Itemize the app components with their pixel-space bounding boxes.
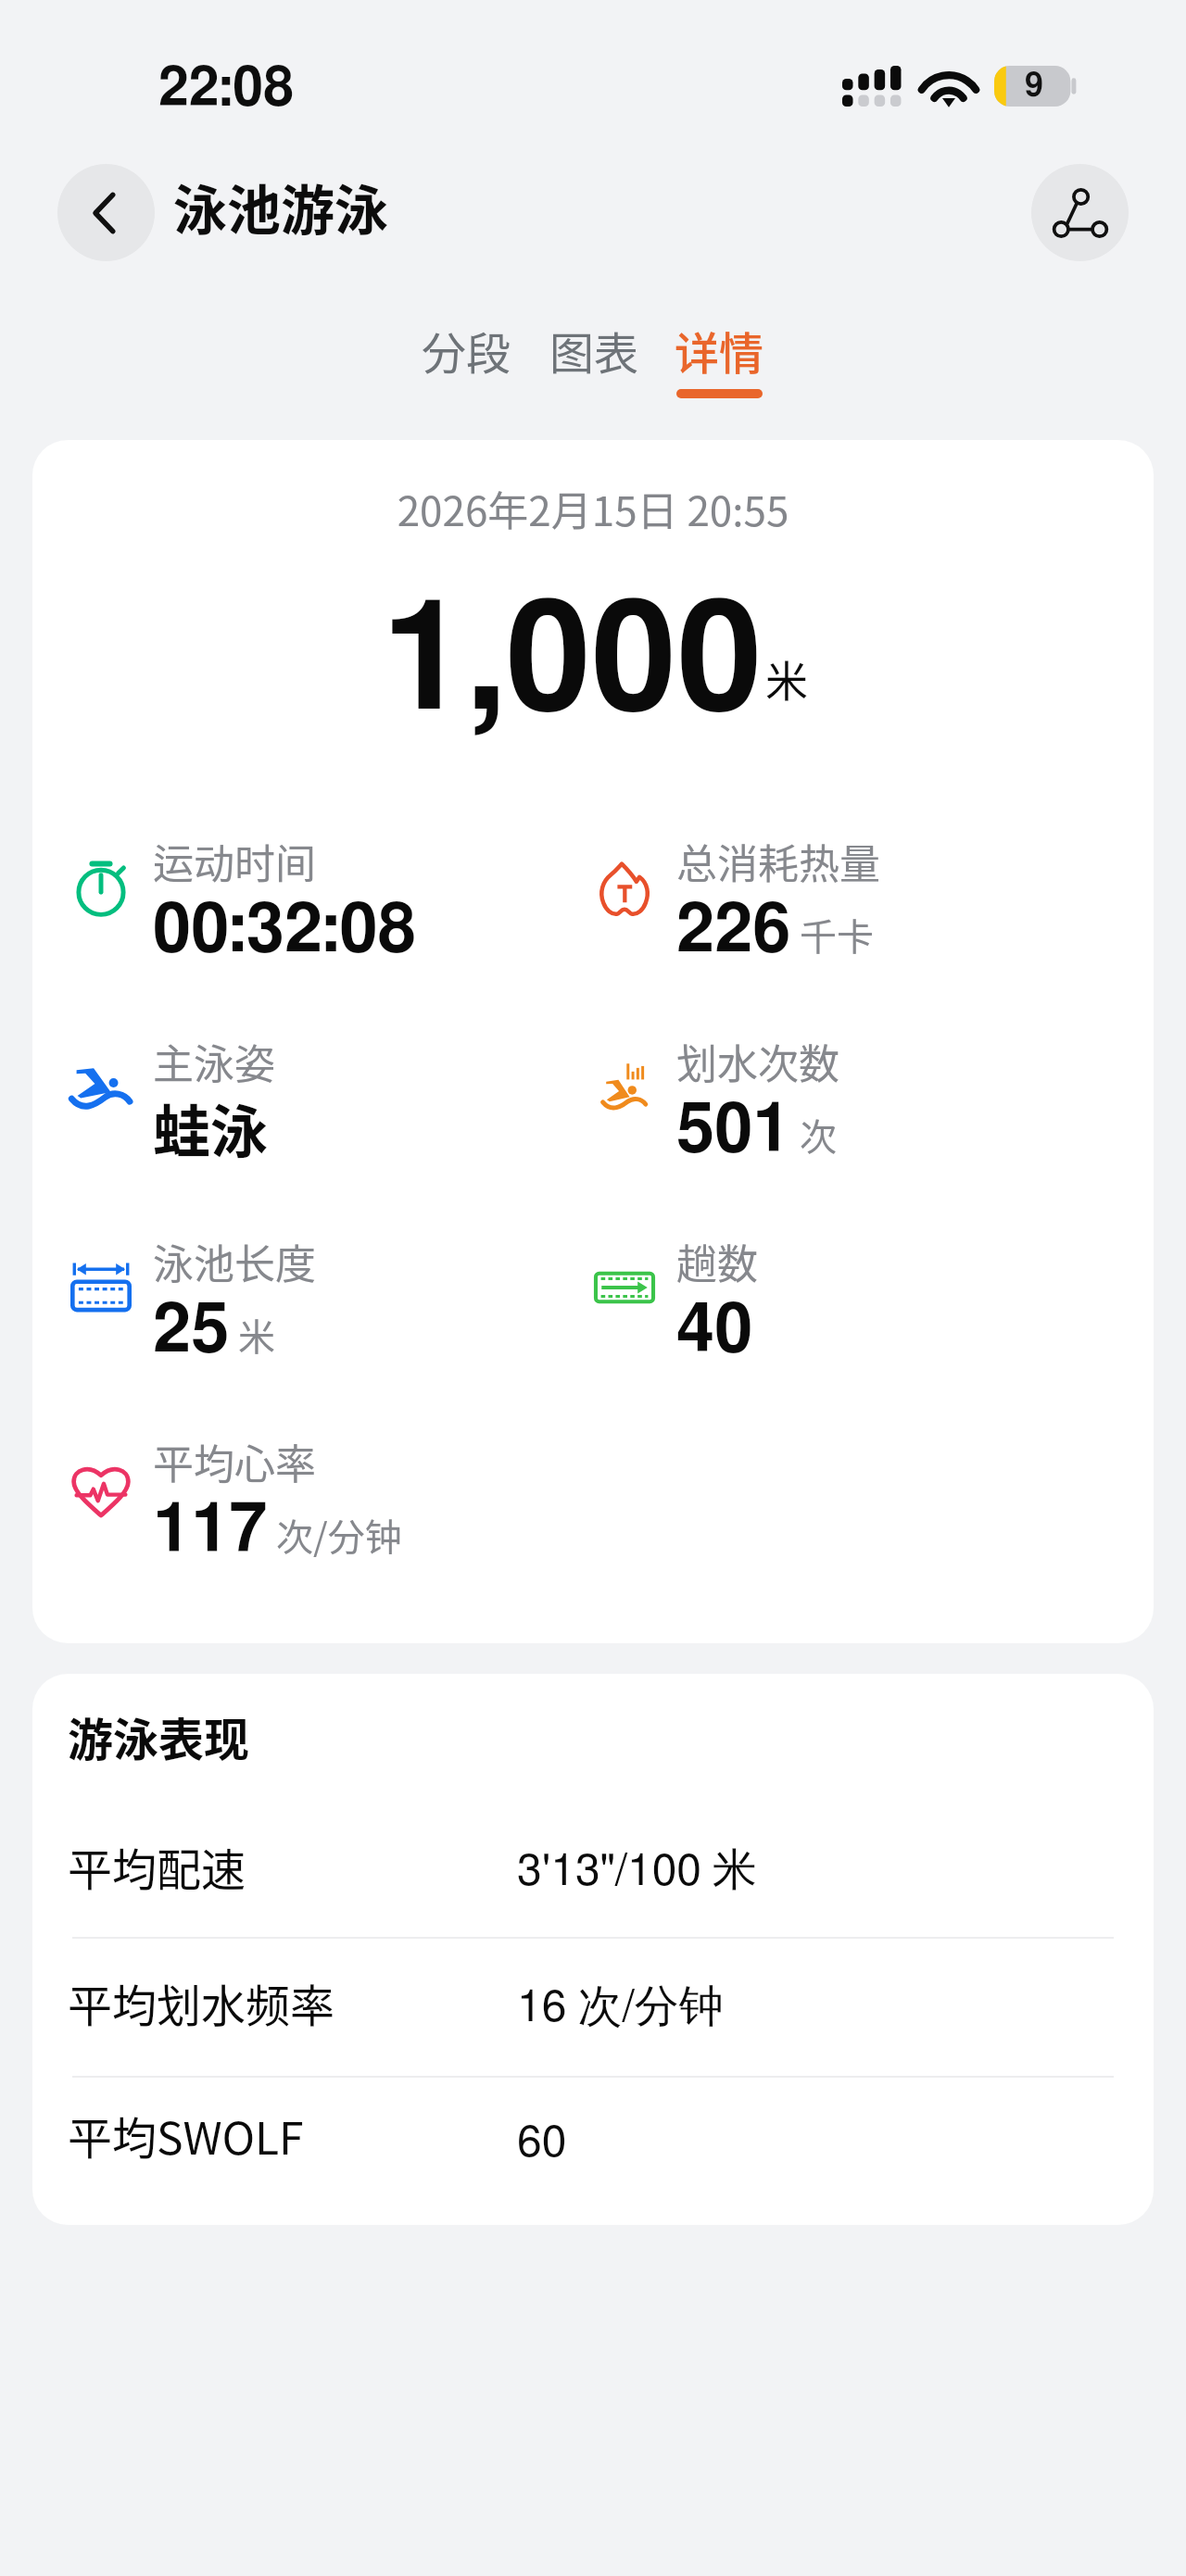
staticText: 蛙泳 bbox=[153, 1087, 269, 1170]
staticText: 泳池长度 bbox=[153, 1232, 316, 1291]
button[interactable]: 划水次数 bbox=[594, 1022, 1085, 1170]
staticText: 平均划水频率 bbox=[68, 1970, 335, 2035]
staticText: 游泳表现 bbox=[68, 1703, 250, 1769]
staticText: 16 次/分钟 bbox=[517, 1979, 724, 2034]
staticText: 趟数 bbox=[676, 1232, 758, 1291]
button[interactable]: Share bbox=[1031, 164, 1129, 261]
staticText: 60 bbox=[517, 2121, 567, 2166]
button[interactable]: 运动时间 bbox=[70, 822, 561, 970]
staticText: 平均心率 bbox=[153, 1432, 316, 1491]
staticText: 详情 bbox=[675, 318, 764, 383]
staticText: 40 bbox=[676, 1297, 753, 1365]
staticText: 分段 bbox=[422, 318, 511, 383]
button[interactable]: 详情 bbox=[660, 318, 778, 398]
staticText: 1,000 bbox=[382, 585, 763, 739]
staticText: 平均配速 bbox=[68, 1834, 246, 1899]
staticText: 米 bbox=[765, 647, 808, 710]
staticText: 泳池游泳 bbox=[173, 168, 389, 245]
staticText: 次/分钟 bbox=[276, 1508, 402, 1562]
staticText: 运动时间 bbox=[153, 832, 316, 891]
staticText: 501 bbox=[676, 1097, 791, 1165]
button[interactable]: 总消耗热量 bbox=[594, 822, 1085, 970]
staticText: 226 bbox=[676, 897, 791, 965]
staticText: 3'13"/100 米 bbox=[517, 1842, 758, 1898]
button[interactable]: 平均划水频率 bbox=[32, 1962, 1154, 2064]
button[interactable]: 平均配速 bbox=[32, 1826, 1154, 1928]
staticText: 00:32:08 bbox=[153, 897, 416, 965]
staticText: 主泳姿 bbox=[153, 1032, 275, 1091]
staticText: 划水次数 bbox=[676, 1032, 839, 1091]
button[interactable]: 平均心率 bbox=[70, 1422, 561, 1570]
staticText: 图表 bbox=[549, 318, 639, 383]
staticText: 平均SWOLF bbox=[68, 2103, 304, 2168]
staticText: 次 bbox=[800, 1108, 837, 1162]
staticText: 9 bbox=[1025, 69, 1044, 103]
staticText: 千卡 bbox=[800, 908, 874, 961]
staticText: 米 bbox=[238, 1308, 275, 1362]
button[interactable]: Back bbox=[57, 164, 155, 261]
button[interactable]: 泳池长度 bbox=[70, 1222, 561, 1370]
button[interactable]: 平均SWOLF bbox=[32, 2094, 1154, 2196]
button[interactable]: 分段 bbox=[407, 318, 525, 398]
button[interactable]: 图表 bbox=[535, 318, 653, 398]
staticText: 117 bbox=[153, 1497, 268, 1565]
button[interactable]: 主泳姿 bbox=[70, 1022, 561, 1170]
staticText: 总消耗热量 bbox=[676, 832, 880, 891]
staticText: 2026年2月15日 20:55 bbox=[32, 479, 1154, 538]
staticText: 22:08 bbox=[158, 62, 294, 117]
button[interactable]: 趟数 bbox=[594, 1222, 1085, 1370]
staticText: 25 bbox=[153, 1297, 230, 1365]
